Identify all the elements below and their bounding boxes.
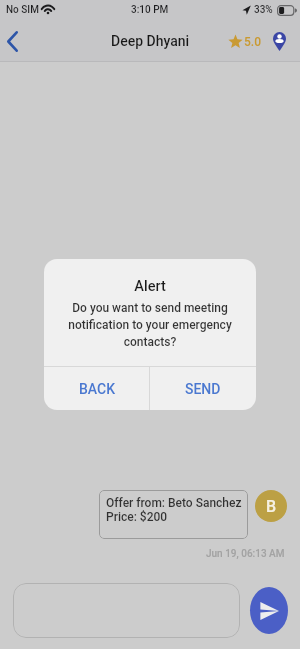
staticText: Alert: [44, 278, 256, 295]
staticText: 33%: [254, 4, 273, 16]
staticText: Deep Dhyani: [111, 33, 190, 49]
staticText: 3:10 PM: [131, 4, 169, 16]
button[interactable]: Location: [268, 31, 290, 53]
staticText: BACK: [79, 381, 115, 397]
staticText: No SIM: [6, 4, 39, 16]
button[interactable]: Send: [250, 587, 288, 634]
staticText: Jun 19, 06:13 AM: [206, 548, 285, 560]
button[interactable]: 5.0: [226, 28, 262, 55]
button[interactable]: Back: [0, 20, 36, 62]
button[interactable]: Offer from: Beto Sanchez: [99, 490, 248, 539]
button[interactable]: Message input: [13, 583, 240, 638]
button[interactable]: BACK: [44, 367, 149, 410]
staticText: Do you want to send meeting notification…: [52, 301, 248, 349]
staticText: Price: $200: [106, 510, 168, 524]
staticText: 5.0: [244, 35, 261, 49]
staticText: SEND: [185, 381, 221, 397]
staticText: B: [266, 497, 277, 516]
button[interactable]: Beto Sanchez avatar: [255, 490, 287, 522]
staticText: Offer from: Beto Sanchez: [106, 496, 242, 510]
button[interactable]: SEND: [150, 367, 256, 410]
